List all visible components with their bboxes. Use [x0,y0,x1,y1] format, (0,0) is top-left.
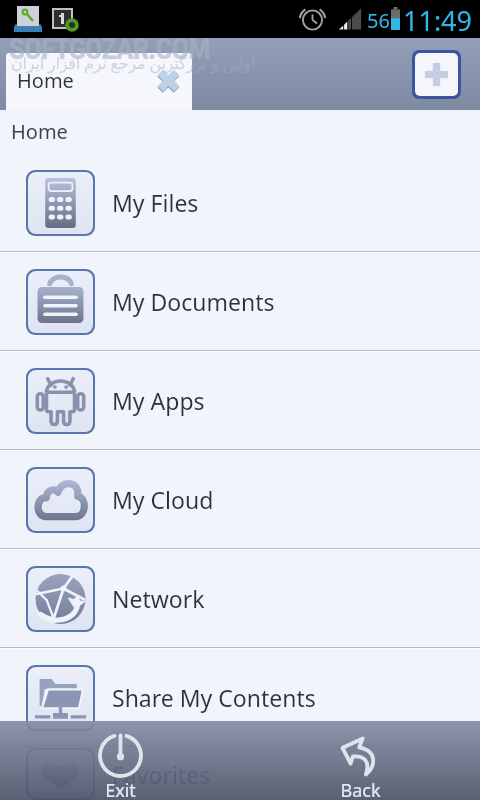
staticText: My Cloud [112,484,214,515]
staticText: اولین و بزرگترین مرجع نرم افزار ایران [11,52,256,74]
other: Close tab [157,69,180,92]
staticText: 56 [367,7,390,34]
staticText: My Apps [112,385,205,416]
staticText: Favorites [112,759,211,790]
staticText: My Documents [112,286,275,317]
button[interactable]: New tab [415,53,458,96]
button[interactable]: Exit [0,721,240,800]
button[interactable]: My Cloud [0,451,480,548]
staticText: Network [112,583,205,614]
staticText: Exit [105,778,136,800]
button[interactable]: My Documents [0,253,480,350]
staticText: Share My Contents [112,682,316,713]
staticText: My Files [112,187,199,218]
button[interactable]: Home [6,53,192,110]
button[interactable]: My Files [0,154,480,251]
staticText: Home [11,118,68,145]
staticText: 11:49 [403,2,473,39]
staticText: Home [17,67,74,94]
button[interactable]: Favorites [0,748,480,800]
staticText: Back [340,778,381,800]
button[interactable]: Back [240,721,480,800]
staticText: SOFTGOZAR.COM [9,31,210,66]
button[interactable]: Share My Contents [0,649,480,746]
button[interactable]: My Apps [0,352,480,449]
button[interactable]: Network [0,550,480,647]
